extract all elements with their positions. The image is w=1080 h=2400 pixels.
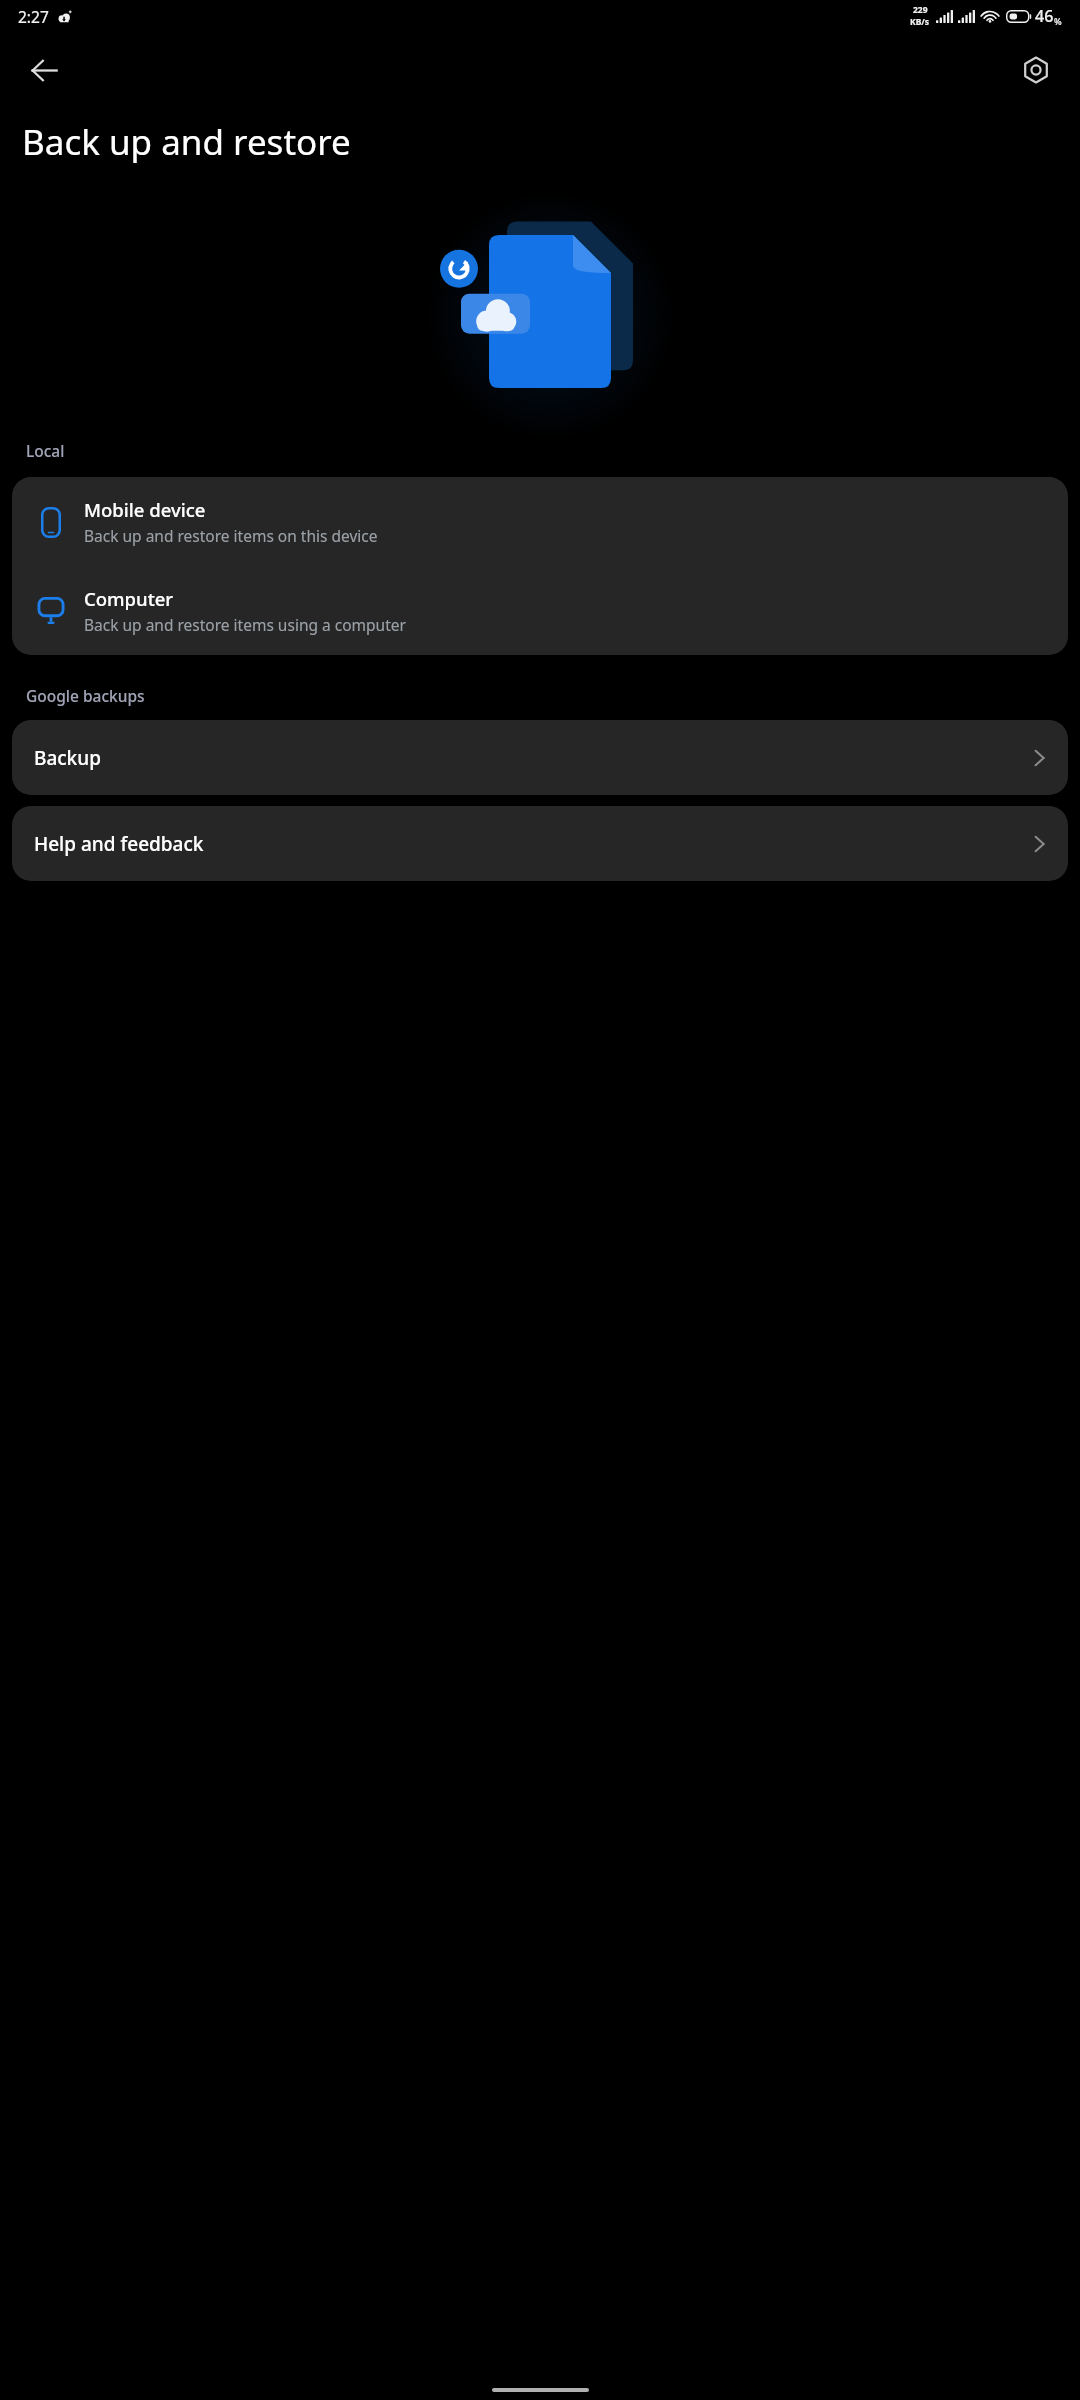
staticText: Back up and restore	[22, 118, 351, 166]
staticText: Local	[26, 440, 65, 461]
staticText: Back up and restore items on this device	[84, 525, 378, 546]
staticText: Backup	[34, 745, 101, 771]
staticText: 229	[913, 4, 928, 16]
button[interactable]: Backup	[12, 720, 1068, 795]
button[interactable]: Computer	[12, 566, 1068, 655]
button[interactable]: Help and feedback	[12, 806, 1068, 881]
staticText: 2:27	[18, 6, 49, 27]
button[interactable]: Mobile device	[12, 477, 1068, 566]
staticText: Back up and restore items using a comput…	[84, 614, 406, 635]
button[interactable]: Back	[18, 44, 70, 96]
staticText: KB/s	[910, 16, 930, 28]
staticText: Computer	[84, 586, 174, 611]
staticText: Help and feedback	[34, 831, 204, 857]
staticText: Google backups	[26, 685, 145, 706]
staticText: Mobile device	[84, 497, 206, 522]
staticText: %	[1054, 15, 1062, 27]
button[interactable]: Settings	[1010, 44, 1062, 96]
staticText: 46	[1035, 5, 1054, 27]
